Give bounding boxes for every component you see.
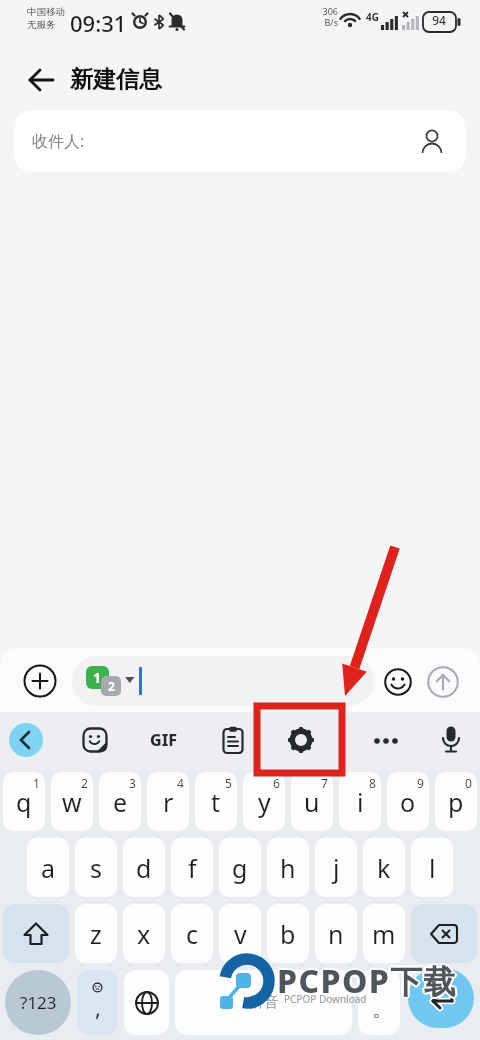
staticText: PCPOP下载: [276, 960, 456, 1004]
staticText: PCPOP下载: [279, 959, 459, 1003]
staticText: r: [163, 785, 174, 819]
staticText: 新建信息: [70, 65, 162, 94]
button[interactable]: p: [435, 772, 477, 831]
button[interactable]: [221, 726, 245, 754]
staticText: k: [377, 851, 391, 885]
button[interactable]: h: [267, 838, 309, 897]
staticText: PCPOP下载: [275, 959, 455, 1003]
staticText: 9: [417, 775, 424, 791]
button[interactable]: [411, 904, 477, 963]
button[interactable]: z: [75, 904, 117, 963]
staticText: 5: [225, 775, 232, 791]
staticText: p: [448, 785, 464, 819]
button[interactable]: g: [219, 838, 261, 897]
staticText: 6: [273, 775, 280, 791]
button[interactable]: [427, 666, 459, 698]
button[interactable]: e: [99, 772, 141, 831]
staticText: g: [232, 851, 248, 885]
button[interactable]: m: [363, 904, 405, 963]
button[interactable]: [9, 723, 43, 757]
staticText: x: [137, 917, 151, 951]
staticText: j: [333, 851, 340, 885]
staticText: h: [280, 851, 296, 885]
button[interactable]: x: [123, 904, 165, 963]
staticText: t: [211, 785, 221, 819]
button[interactable]: [408, 968, 474, 1028]
button[interactable]: 收件人:: [14, 110, 466, 172]
button[interactable]: a: [27, 838, 69, 897]
button[interactable]: d: [123, 838, 165, 897]
staticText: q: [16, 785, 32, 819]
staticText: o: [400, 785, 416, 819]
button[interactable]: o: [387, 772, 429, 831]
button[interactable]: [372, 736, 400, 746]
staticText: 2: [81, 775, 88, 791]
staticText: 收件人:: [32, 130, 85, 152]
staticText: n: [328, 917, 344, 951]
button[interactable]: [22, 60, 62, 100]
staticText: c: [186, 917, 199, 951]
staticText: b: [280, 917, 296, 951]
staticText: 1: [33, 775, 40, 791]
button[interactable]: w: [51, 772, 93, 831]
staticText: 1: [93, 668, 102, 687]
button[interactable]: f: [171, 838, 213, 897]
button[interactable]: ?123: [5, 970, 71, 1035]
staticText: 3: [129, 775, 136, 791]
staticText: 94: [424, 12, 454, 28]
button[interactable]: v: [219, 904, 261, 963]
button[interactable]: c: [171, 904, 213, 963]
staticText: a: [41, 851, 56, 885]
staticText: z: [90, 917, 102, 951]
staticText: f: [188, 851, 197, 885]
staticText: ?123: [20, 991, 57, 1014]
button[interactable]: [440, 725, 462, 755]
staticText: v: [234, 917, 247, 951]
button[interactable]: y: [243, 772, 285, 831]
staticText: s: [90, 851, 102, 885]
button[interactable]: n: [315, 904, 357, 963]
button[interactable]: [124, 970, 169, 1035]
staticText: GIF: [150, 729, 178, 751]
staticText: ,: [95, 992, 101, 1022]
button[interactable]: l: [411, 838, 453, 897]
button[interactable]: [82, 727, 108, 753]
button[interactable]: u: [291, 772, 333, 831]
button[interactable]: [384, 668, 412, 696]
staticText: m: [372, 917, 396, 951]
button[interactable]: [23, 664, 57, 698]
staticText: u: [304, 785, 320, 819]
staticText: PCPOP Download: [284, 992, 367, 1006]
button[interactable]: 1: [72, 656, 374, 706]
button[interactable]: k: [363, 838, 405, 897]
button[interactable]: b: [267, 904, 309, 963]
staticText: 4G: [366, 10, 379, 24]
staticText: PCPOP下载: [276, 958, 456, 1002]
button[interactable]: GIF: [144, 728, 184, 752]
staticText: i: [357, 785, 364, 819]
staticText: PCPOP下载: [277, 961, 457, 1005]
staticText: l: [429, 851, 436, 885]
button[interactable]: 。: [358, 970, 400, 1035]
button[interactable]: ,: [77, 970, 118, 1035]
staticText: y: [258, 785, 271, 819]
button[interactable]: t: [195, 772, 237, 831]
staticText: 2: [108, 678, 115, 694]
staticText: 09:31: [70, 8, 127, 38]
staticText: PCPOP下载: [277, 957, 457, 1001]
button[interactable]: [288, 727, 314, 753]
button[interactable]: s: [75, 838, 117, 897]
button[interactable]: 拼音: [175, 970, 352, 1035]
staticText: w: [62, 785, 82, 819]
button[interactable]: j: [315, 838, 357, 897]
button[interactable]: [3, 904, 69, 963]
staticText: 4: [177, 775, 184, 791]
button[interactable]: q: [3, 772, 45, 831]
staticText: PCPOP下载: [278, 958, 458, 1002]
staticText: 0: [465, 775, 472, 791]
staticText: 中国移动 无服务: [27, 6, 65, 31]
staticText: 拼音: [249, 993, 279, 1012]
button[interactable]: r: [147, 772, 189, 831]
button[interactable]: i: [339, 772, 381, 831]
staticText: PCPOP下载: [278, 960, 458, 1004]
